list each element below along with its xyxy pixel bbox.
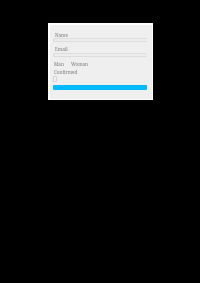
staticText: Name [55, 32, 68, 38]
staticText: Confirmed [54, 69, 78, 75]
button[interactable]: Woman [71, 61, 89, 67]
staticText: Man [54, 61, 64, 67]
button[interactable]: Man [54, 61, 64, 67]
button[interactable]: Name input field [53, 38, 147, 42]
staticText: Woman [71, 61, 89, 67]
staticText: Email [55, 46, 68, 52]
button[interactable]: Confirmed check box [53, 76, 57, 82]
button[interactable]: Submit [53, 85, 147, 90]
button[interactable]: Email input field [53, 53, 147, 57]
